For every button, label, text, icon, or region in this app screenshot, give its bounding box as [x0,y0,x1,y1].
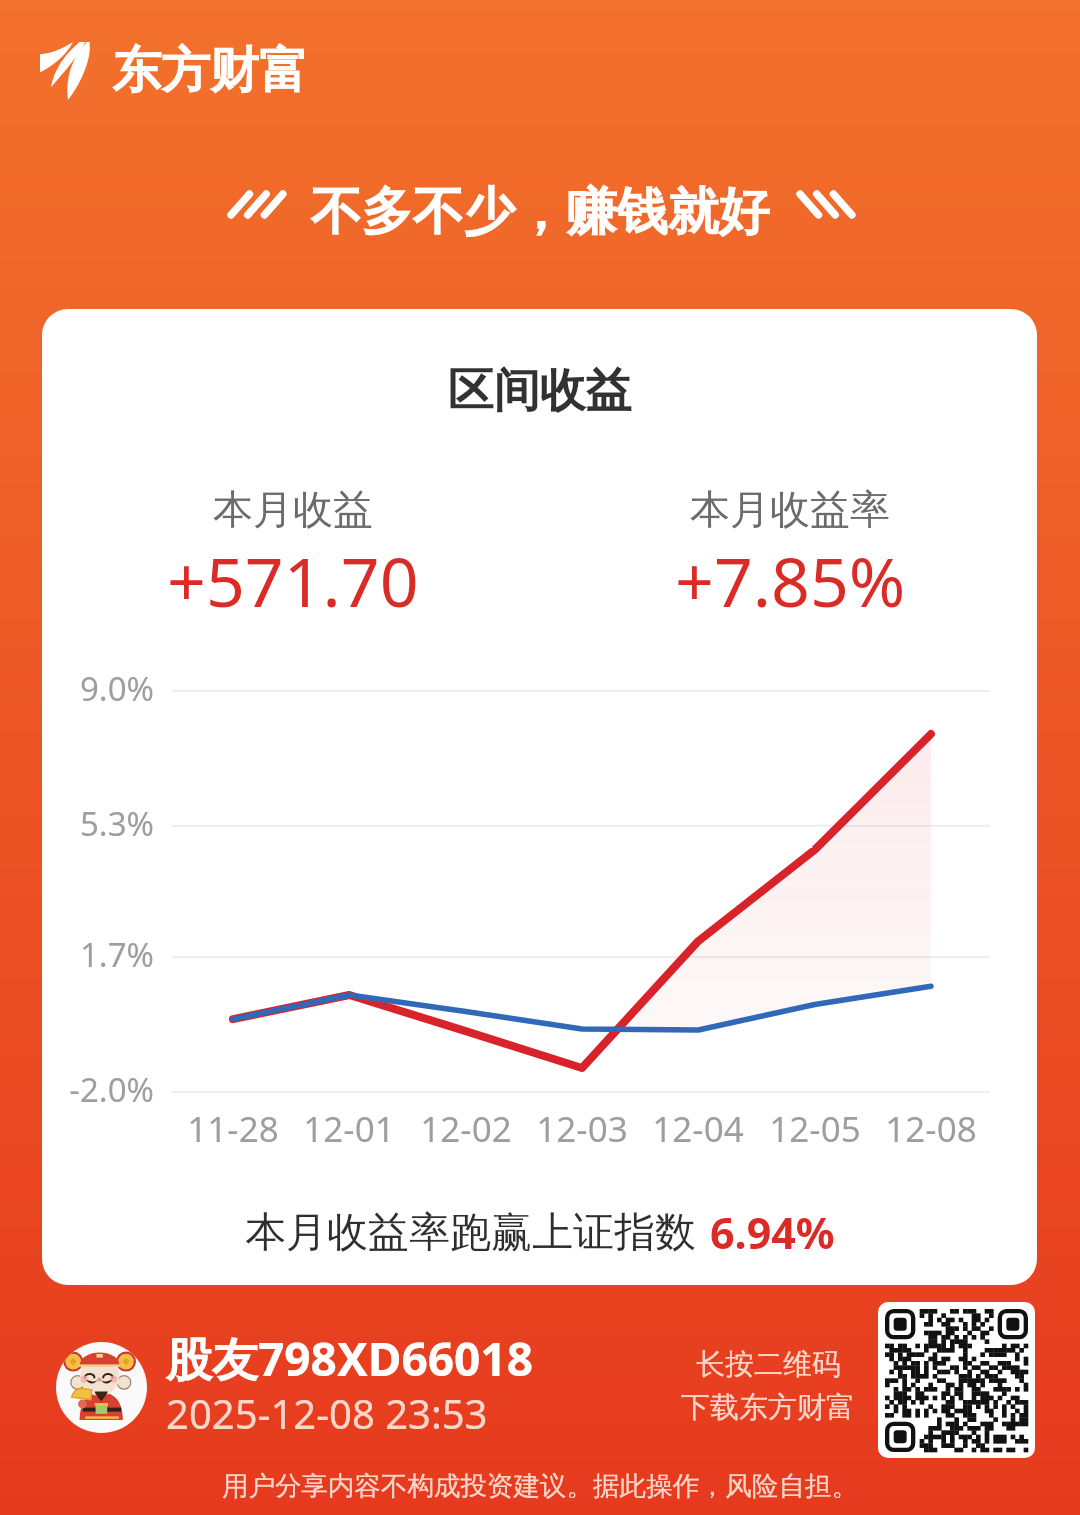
staticText: 12-05 [740,1105,890,1153]
staticText: 12-02 [391,1105,541,1153]
staticText: 不多不少，赚钱就好 [0,180,1080,244]
button[interactable]: 东方财富 [40,40,308,102]
staticText: 12-04 [623,1105,773,1153]
staticText: 12-03 [507,1105,657,1153]
staticText: 用户分享内容不构成投资建议。据此操作，风险自担。 [0,1469,1080,1502]
button[interactable]: 区间收益 [42,309,1037,1285]
staticText: 股友798XD66018 [166,1327,533,1390]
staticText: 11-28 [158,1105,308,1153]
staticText: 12-01 [274,1105,424,1153]
staticText: 本月收益率跑赢上证指数 [245,1207,696,1259]
staticText: 区间收益 [42,362,1037,420]
staticText: 6.94% [710,1203,835,1262]
button[interactable]: QR code to download app [878,1302,1035,1458]
staticText: 9.0% [42,666,154,711]
staticText: +7.85% [675,534,906,627]
staticText: 1.7% [42,932,154,977]
staticText: 12-08 [856,1105,1006,1153]
staticText: -2.0% [42,1067,154,1112]
button[interactable]: User avatar [56,1342,147,1433]
staticText: +571.70 [167,534,419,627]
staticText: 下载东方财富 [681,1389,855,1426]
staticText: 本月收益 [213,484,373,534]
staticText: 东方财富 [112,40,308,102]
staticText: 5.3% [42,801,154,846]
staticText: 本月收益率 [690,484,890,534]
staticText: 长按二维码 [696,1346,841,1383]
staticText: 2025-12-08 23:53 [166,1386,488,1440]
